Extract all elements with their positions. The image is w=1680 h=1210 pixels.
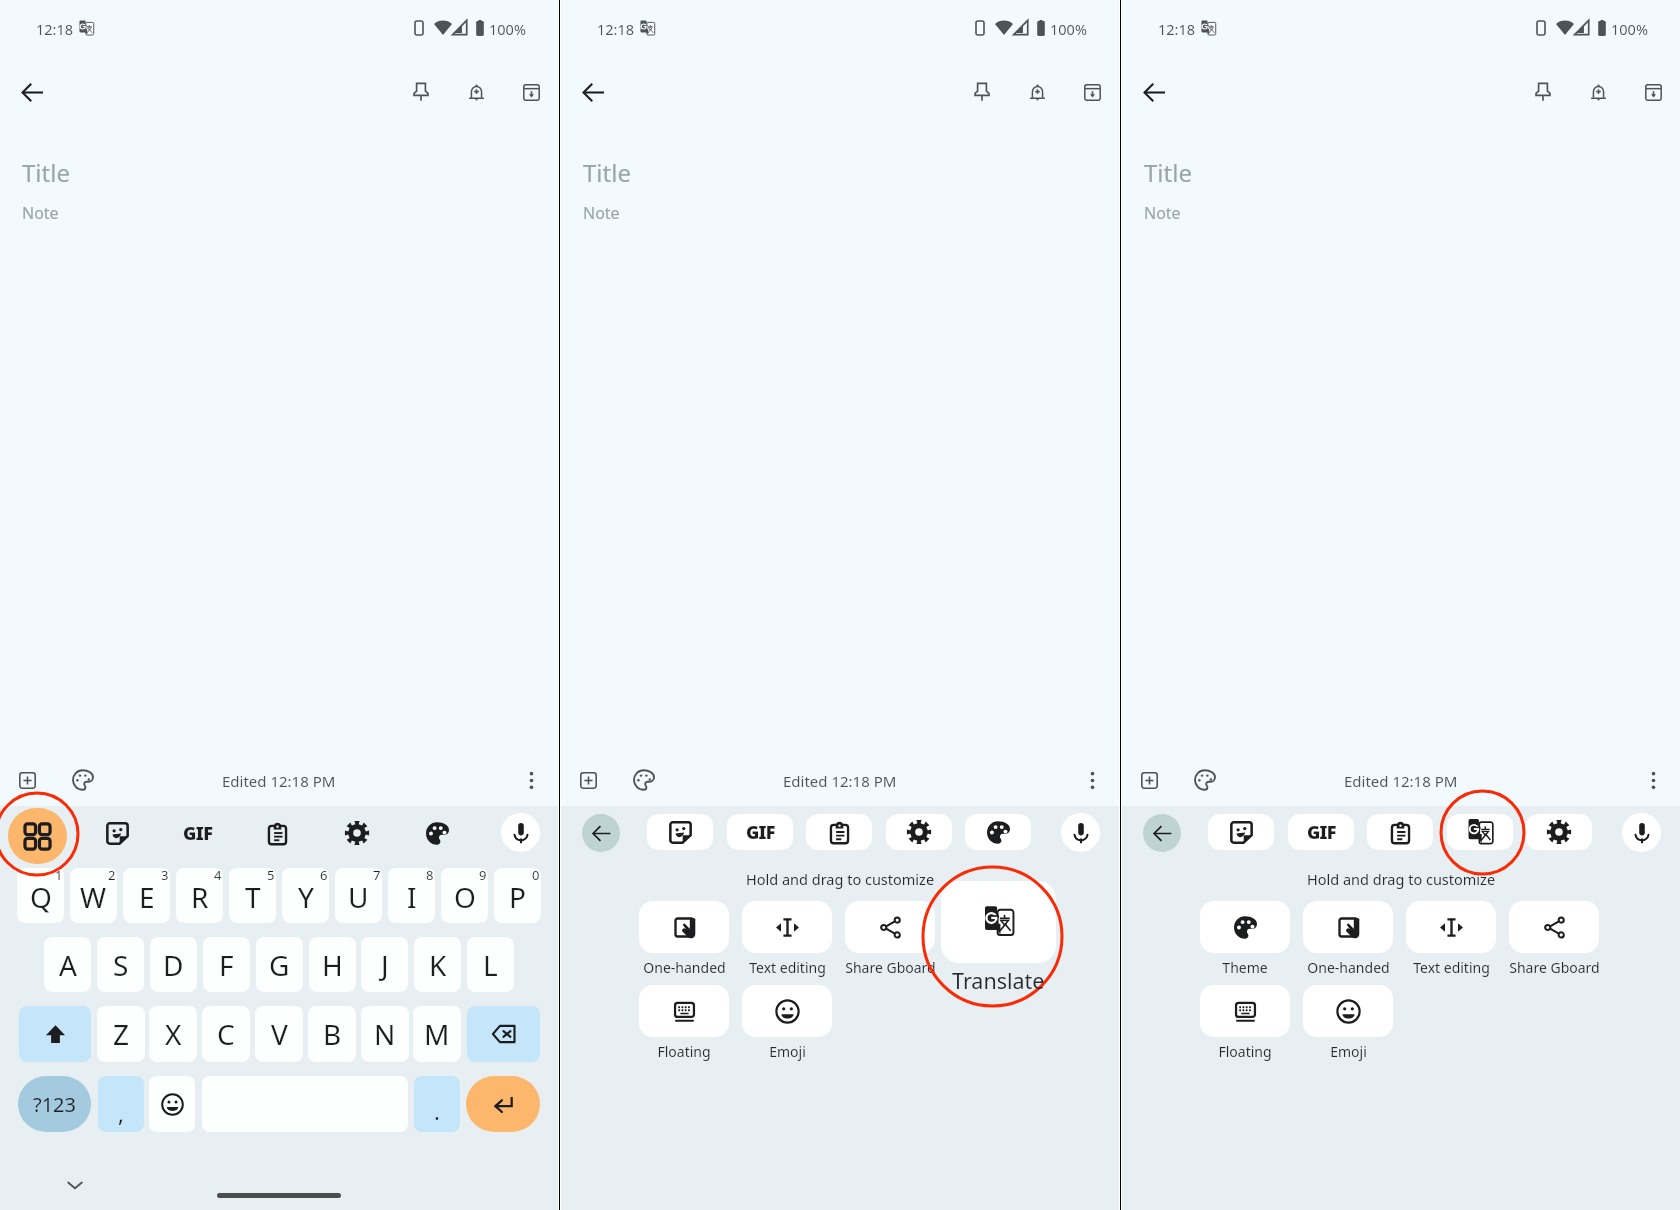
staticText: 9 xyxy=(479,868,487,884)
button[interactable]: Z xyxy=(97,1006,145,1062)
button[interactable]: Share Gboard xyxy=(845,901,935,953)
button[interactable]: Voice input xyxy=(1622,813,1661,852)
button[interactable]: A xyxy=(44,937,91,992)
button[interactable]: Share Gboard xyxy=(1509,901,1599,953)
button[interactable]: Shift xyxy=(19,1006,91,1062)
button[interactable]: Settings xyxy=(886,814,952,850)
button[interactable]: Back xyxy=(1130,68,1178,116)
button[interactable]: Add xyxy=(1129,760,1170,801)
button[interactable]: Reminder xyxy=(1574,68,1622,116)
button[interactable]: H xyxy=(309,937,356,992)
button[interactable]: S xyxy=(97,937,144,992)
button[interactable]: Change colour xyxy=(1184,759,1226,801)
button[interactable]: G xyxy=(256,937,303,992)
button[interactable]: Stickers xyxy=(647,814,713,850)
button[interactable]: X xyxy=(149,1006,197,1062)
button[interactable]: Emoji xyxy=(742,985,832,1037)
button[interactable]: More options xyxy=(511,760,552,801)
button[interactable]: GIF xyxy=(1288,814,1354,850)
staticText: Note xyxy=(22,202,59,224)
button[interactable]: O xyxy=(441,868,488,923)
staticText: O xyxy=(454,878,476,916)
button[interactable]: D xyxy=(150,937,197,992)
button[interactable]: Clipboard xyxy=(806,814,872,850)
button[interactable]: E xyxy=(123,868,170,923)
button[interactable]: Change colour xyxy=(62,759,104,801)
button[interactable]: One-handed xyxy=(1303,901,1393,953)
button[interactable]: B xyxy=(308,1006,356,1062)
button[interactable]: Back xyxy=(1143,814,1181,852)
button[interactable]: GIF xyxy=(727,814,793,850)
button[interactable]: C xyxy=(202,1006,250,1062)
button[interactable]: Translate xyxy=(1447,814,1513,850)
button[interactable]: R xyxy=(176,868,223,923)
button[interactable]: Back xyxy=(582,814,620,852)
button[interactable]: Clipboard xyxy=(1367,814,1433,850)
button[interactable]: More options xyxy=(1072,760,1113,801)
staticText: 0 xyxy=(532,868,540,884)
staticText: Edited 12:18 PM xyxy=(222,771,336,791)
button[interactable]: P xyxy=(494,868,541,923)
button[interactable]: Text editing xyxy=(1406,901,1496,953)
button[interactable]: Hide keyboard xyxy=(62,1172,88,1198)
button[interactable]: Themes xyxy=(965,814,1031,850)
button[interactable]: Settings xyxy=(335,811,379,855)
button[interactable]: Add xyxy=(7,760,48,801)
button[interactable]: Translate xyxy=(941,881,1056,963)
button[interactable]: Back xyxy=(8,68,56,116)
staticText: J xyxy=(381,946,389,984)
button[interactable]: Reminder xyxy=(1013,68,1061,116)
button[interactable]: F xyxy=(203,937,250,992)
button[interactable]: N xyxy=(361,1006,409,1062)
button[interactable]: Stickers xyxy=(1208,814,1274,850)
button[interactable]: Emoji xyxy=(149,1076,195,1132)
button[interactable]: More options xyxy=(1633,760,1674,801)
button[interactable]: Backspace xyxy=(467,1006,540,1062)
button[interactable]: Pin note xyxy=(1519,68,1567,116)
staticText: A xyxy=(59,946,77,984)
button[interactable]: GIF xyxy=(176,811,220,855)
button[interactable]: I xyxy=(388,868,435,923)
button[interactable]: Floating xyxy=(1200,985,1290,1037)
button[interactable]: Clipboard xyxy=(255,811,299,855)
button[interactable]: Archive xyxy=(1629,68,1677,116)
button[interactable]: V xyxy=(255,1006,303,1062)
button[interactable]: Change colour xyxy=(623,759,665,801)
button[interactable]: M xyxy=(413,1006,461,1062)
staticText: Share Gboard xyxy=(845,958,936,977)
button[interactable]: Add xyxy=(568,760,609,801)
button[interactable]: Reminder xyxy=(452,68,500,116)
button[interactable]: Text editing xyxy=(742,901,832,953)
staticText: X xyxy=(165,1015,182,1053)
button[interactable]: Archive xyxy=(507,68,555,116)
button[interactable]: Floating xyxy=(639,985,729,1037)
button[interactable]: Themes xyxy=(415,811,459,855)
staticText: I xyxy=(407,878,417,916)
button[interactable]: Voice input xyxy=(1061,813,1100,852)
staticText: M xyxy=(424,1015,450,1053)
button[interactable]: Y xyxy=(282,868,329,923)
button[interactable]: Pin note xyxy=(958,68,1006,116)
button[interactable]: K xyxy=(414,937,461,992)
button[interactable]: J xyxy=(361,937,408,992)
button[interactable]: Comma xyxy=(98,1076,144,1132)
button[interactable]: Stickers xyxy=(95,811,139,855)
button[interactable]: More keyboard tools xyxy=(8,808,67,864)
button[interactable]: Archive xyxy=(1068,68,1116,116)
button[interactable]: Enter xyxy=(466,1076,540,1132)
button[interactable]: Voice input xyxy=(501,813,540,852)
button[interactable]: U xyxy=(335,868,382,923)
button[interactable]: T xyxy=(229,868,276,923)
button[interactable]: One-handed xyxy=(639,901,729,953)
button[interactable]: Settings xyxy=(1526,814,1592,850)
button[interactable]: Theme xyxy=(1200,901,1290,953)
button[interactable]: Period xyxy=(414,1076,460,1132)
button[interactable]: Pin note xyxy=(397,68,445,116)
button[interactable]: Back xyxy=(569,68,617,116)
button[interactable]: Emoji xyxy=(1303,985,1393,1037)
button[interactable]: L xyxy=(467,937,514,992)
button[interactable]: W xyxy=(70,868,117,923)
button[interactable]: ?123 xyxy=(18,1076,91,1132)
button[interactable]: Q xyxy=(17,868,64,923)
